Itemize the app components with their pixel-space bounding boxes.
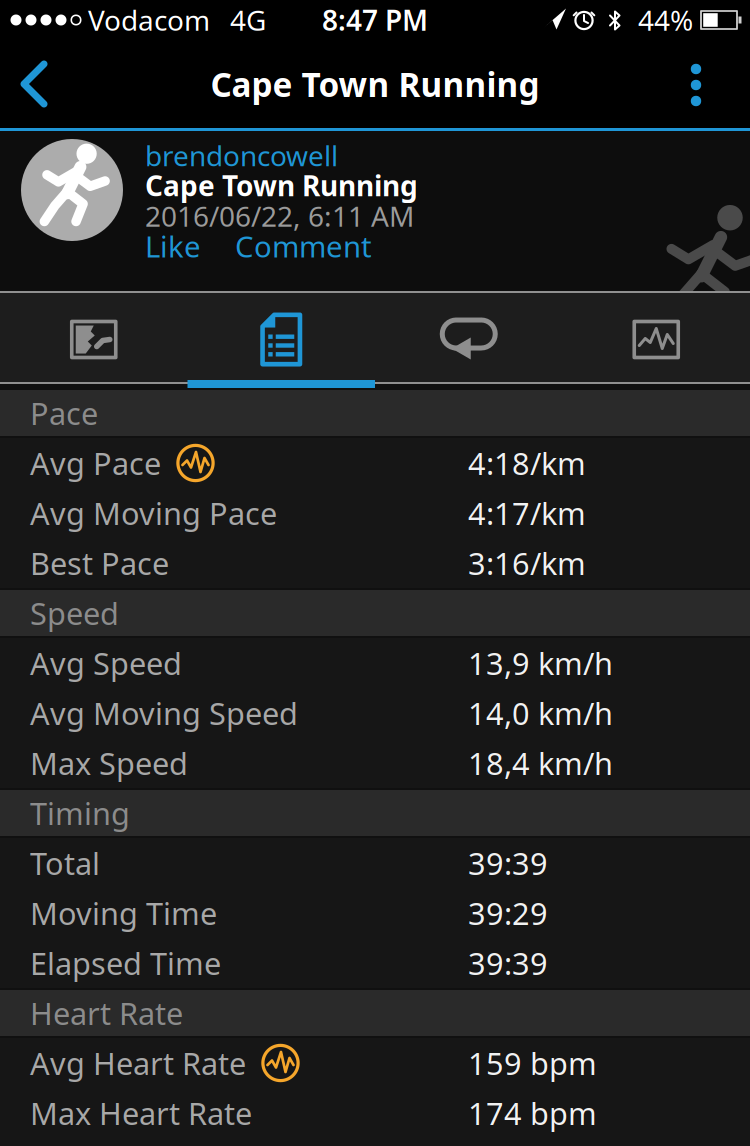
button[interactable]: Comment [235,226,372,265]
staticText: Pace [30,393,98,433]
button[interactable]: Profile brendoncowell [21,139,123,241]
staticText: 14,0 km/h [468,693,613,733]
staticText: 3:16/km [468,543,586,583]
staticText: Speed [30,593,119,633]
button[interactable]: Like [145,226,201,265]
button[interactable]: Cape Town Running [145,170,418,201]
staticText: 18,4 km/h [468,743,613,783]
staticText: brendoncowell [145,137,338,174]
staticText: Avg Moving Speed [30,693,298,733]
staticText: Avg Pace [30,443,161,483]
button[interactable]: brendoncowell [145,141,338,170]
staticText: Moving Time [30,893,217,933]
staticText: Max Speed [30,743,188,783]
staticText: 2016/06/22, 6:11 AM [145,197,414,235]
staticText: Vodacom [88,1,210,39]
staticText: Avg Speed [30,643,182,683]
staticText: 159 bpm [468,1043,597,1083]
button[interactable]: Charts [562,296,750,383]
staticText: 39:29 [468,893,548,933]
staticText: 8:47 PM [322,1,428,39]
staticText: 4:18/km [468,443,586,483]
staticText: 174 bpm [468,1093,597,1133]
staticText: 4G [230,1,266,39]
button[interactable]: Snapshot [0,296,187,383]
button[interactable]: Laps [375,296,562,383]
staticText: 44% [638,1,693,39]
staticText: 39:39 [468,943,548,983]
staticText: Heart Rate [30,993,183,1033]
button[interactable]: More options [668,48,724,120]
button[interactable]: Back [12,48,68,120]
staticText: 4:17/km [468,493,586,533]
staticText: Avg Moving Pace [30,493,277,533]
staticText: 39:39 [468,843,548,883]
staticText: Max Heart Rate [30,1093,252,1133]
staticText: Cape Town Running [145,167,418,204]
staticText: Elapsed Time [30,943,221,983]
button[interactable]: Details [187,296,375,383]
staticText: Comment [235,226,372,265]
staticText: 13,9 km/h [468,643,613,683]
staticText: Total [30,843,100,883]
staticText: Cape Town Running [210,62,539,106]
staticText: Best Pace [30,543,169,583]
staticText: Avg Heart Rate [30,1043,246,1083]
staticText: Like [145,226,201,265]
staticText: Timing [30,793,130,833]
